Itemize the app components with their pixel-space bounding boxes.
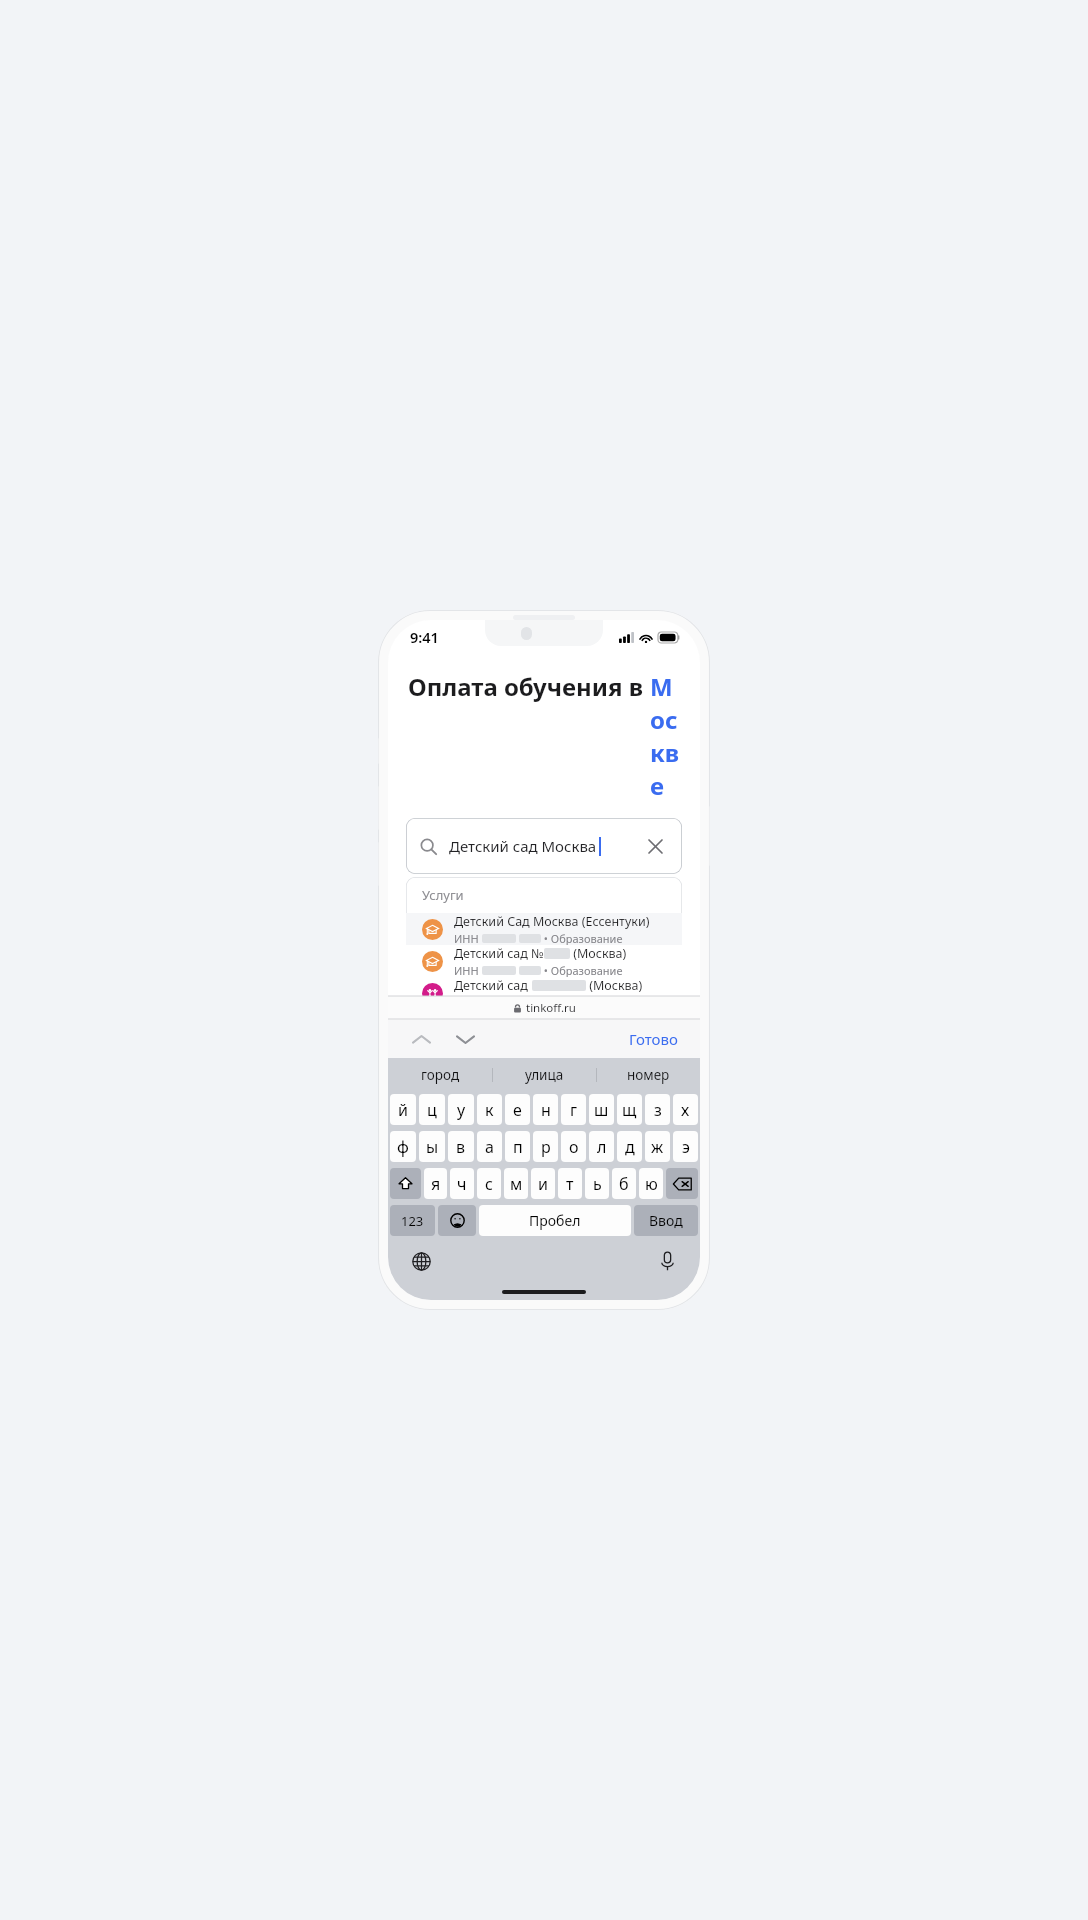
button[interactable]: ы (419, 1131, 445, 1162)
staticText: • Образование (541, 963, 623, 977)
staticText: Детский сад № (454, 945, 544, 962)
staticText: 123 (401, 1212, 424, 1230)
staticText: Пробел (529, 1211, 581, 1230)
button[interactable]: Диктовка (652, 1246, 682, 1276)
staticText: щ (622, 1099, 637, 1121)
staticText: ю (645, 1173, 658, 1195)
button[interactable]: и (531, 1168, 555, 1199)
staticText: а (485, 1136, 494, 1158)
button[interactable]: х (673, 1094, 698, 1125)
button[interactable]: в (448, 1131, 474, 1162)
button[interactable]: б (612, 1168, 636, 1199)
staticText: е (513, 1099, 522, 1121)
staticText: х (681, 1099, 690, 1121)
staticText: л (597, 1136, 607, 1158)
button[interactable]: ф (390, 1131, 416, 1162)
button[interactable]: з (645, 1094, 670, 1125)
staticText: б (619, 1173, 629, 1195)
button[interactable]: Shift (390, 1168, 421, 1199)
button[interactable]: Детский Сад Москва (Ессентуки) (406, 913, 682, 945)
staticText: н (541, 1099, 551, 1121)
button[interactable]: город (388, 1058, 492, 1091)
button[interactable]: м (504, 1168, 528, 1199)
button[interactable]: е (505, 1094, 530, 1125)
staticText: Детский сад (454, 1041, 532, 1057)
staticText: • Образование (541, 931, 623, 945)
staticText: ИНН (454, 931, 482, 945)
button[interactable]: г (561, 1094, 586, 1125)
button[interactable]: й (390, 1094, 416, 1125)
button[interactable]: ж (645, 1131, 670, 1162)
button[interactable]: Сменить язык (406, 1246, 436, 1276)
button[interactable]: т (558, 1168, 582, 1199)
staticText: Детский Сад Москва (Ессентуки) (454, 913, 650, 930)
button[interactable]: Детский сад (406, 977, 682, 1009)
button[interactable]: Очистить (642, 833, 668, 859)
button[interactable]: э (673, 1131, 698, 1162)
button[interactable]: Удалить (666, 1168, 698, 1199)
staticText: м (510, 1173, 523, 1195)
button[interactable]: ч (450, 1168, 474, 1199)
staticText: Москве (650, 670, 680, 802)
staticText: ш (594, 1099, 609, 1121)
staticText: ж (651, 1136, 664, 1158)
staticText: ИНН (454, 995, 482, 1009)
staticText: Детский сад (454, 977, 532, 994)
button[interactable]: Предыдущее поле (406, 1024, 436, 1054)
button[interactable]: щ (617, 1094, 642, 1125)
staticText: Ввод (649, 1211, 683, 1230)
staticText: и (538, 1173, 548, 1195)
button[interactable]: Ввод (634, 1205, 698, 1236)
staticText: Детский Сад (454, 1009, 533, 1026)
staticText: п (513, 1136, 523, 1158)
staticText: • Образование (541, 995, 623, 1009)
button[interactable]: ю (639, 1168, 663, 1199)
button[interactable]: Детский сад (406, 1041, 682, 1057)
button[interactable]: ц (419, 1094, 445, 1125)
button[interactable]: ш (589, 1094, 614, 1125)
staticText: ф (397, 1136, 409, 1158)
staticText: г (570, 1099, 578, 1121)
button[interactable]: Пробел (479, 1205, 631, 1236)
staticText: ь (593, 1173, 602, 1195)
button[interactable]: Эмодзи (438, 1205, 476, 1236)
staticText: ИНН (454, 1027, 482, 1041)
button[interactable]: Следующее поле (450, 1024, 480, 1054)
staticText: номер (627, 1066, 670, 1084)
button[interactable]: ь (585, 1168, 609, 1199)
staticText: город (421, 1066, 460, 1084)
button[interactable]: д (617, 1131, 642, 1162)
staticText: о (569, 1136, 579, 1158)
staticText: Детский сад Москва (449, 836, 597, 856)
button[interactable]: у (448, 1094, 474, 1125)
staticText: к (485, 1099, 494, 1121)
button[interactable]: л (589, 1131, 614, 1162)
staticText: (Москва) (570, 945, 627, 962)
staticText: улица (525, 1066, 564, 1084)
button[interactable]: 123 (390, 1205, 435, 1236)
staticText: с (485, 1173, 493, 1195)
button[interactable]: с (477, 1168, 501, 1199)
button[interactable]: о (561, 1131, 586, 1162)
button[interactable]: р (533, 1131, 558, 1162)
staticText: Услуги (422, 886, 464, 904)
button[interactable]: н (533, 1094, 558, 1125)
staticText: р (541, 1136, 551, 1158)
button[interactable]: Готово (623, 1025, 684, 1053)
button[interactable]: п (505, 1131, 530, 1162)
button[interactable]: Детский Сад (406, 1009, 682, 1041)
button[interactable]: улица (493, 1058, 596, 1091)
staticText: з (654, 1099, 662, 1121)
staticText: 9:41 (410, 627, 439, 647)
button[interactable]: Детский сад Москва (406, 818, 682, 874)
button[interactable]: а (477, 1131, 502, 1162)
staticText: Оплата обучения в (408, 670, 650, 703)
button[interactable]: я (424, 1168, 447, 1199)
button[interactable]: номер (597, 1058, 700, 1091)
staticText: (Москва) (579, 1009, 636, 1026)
staticText: э (682, 1136, 690, 1158)
button[interactable]: к (477, 1094, 502, 1125)
button[interactable]: Детский сад № (406, 945, 682, 977)
staticText: т (566, 1173, 574, 1195)
